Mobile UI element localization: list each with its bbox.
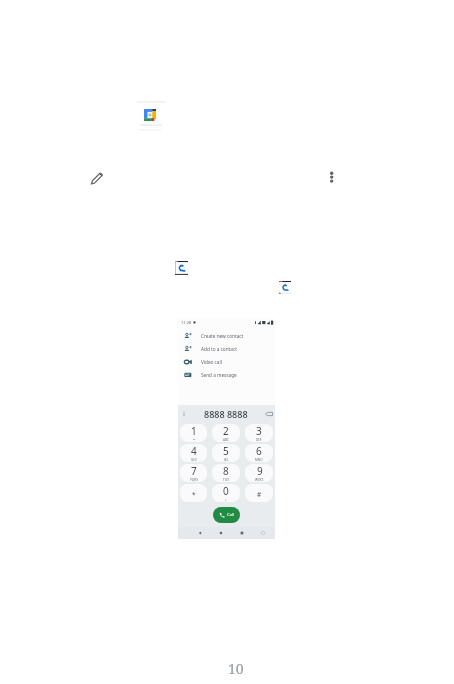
staticText: 10 bbox=[228, 659, 244, 678]
button[interactable]: Phone app screenshot bbox=[279, 281, 291, 294]
button[interactable]: 6 bbox=[245, 444, 273, 462]
staticText: 4 bbox=[191, 444, 197, 458]
button[interactable]: 5 bbox=[212, 444, 240, 462]
button[interactable]: 8 bbox=[212, 464, 240, 482]
button[interactable]: More options bbox=[325, 168, 339, 182]
staticText: Send a message bbox=[201, 372, 237, 378]
button[interactable]: Edit bbox=[90, 171, 104, 185]
button[interactable]: Add to a contact bbox=[178, 342, 275, 355]
staticText: 8 bbox=[223, 464, 229, 478]
button[interactable]: Backspace bbox=[265, 410, 273, 418]
staticText: # bbox=[257, 490, 262, 499]
button[interactable]: 4 bbox=[180, 444, 207, 462]
staticText: Create new contact bbox=[201, 333, 244, 339]
staticText: 9 bbox=[257, 464, 263, 478]
button[interactable]: Screenshot bbox=[259, 529, 267, 537]
staticText: MNO bbox=[255, 458, 263, 462]
button[interactable]: Options bbox=[180, 410, 188, 418]
button[interactable]: Phone app screenshot bbox=[175, 261, 188, 275]
button[interactable]: 7 bbox=[180, 464, 207, 482]
staticText: ABC bbox=[223, 438, 229, 442]
staticText: 2 bbox=[223, 424, 229, 438]
button[interactable]: Contacts app icon bbox=[144, 109, 156, 121]
button[interactable]: Call bbox=[213, 507, 240, 523]
button[interactable]: Home bbox=[217, 529, 225, 537]
staticText: Call bbox=[227, 512, 235, 518]
staticText: * bbox=[192, 490, 196, 499]
button[interactable]: 2 bbox=[212, 424, 240, 442]
button[interactable]: # bbox=[245, 484, 273, 502]
staticText: 0 bbox=[223, 484, 229, 498]
staticText: TUV bbox=[223, 478, 229, 482]
staticText: + bbox=[225, 498, 227, 502]
staticText: 1 bbox=[191, 424, 197, 438]
button[interactable]: 1 bbox=[180, 424, 207, 442]
button[interactable]: Send a message bbox=[178, 368, 275, 381]
staticText: 3 bbox=[256, 424, 262, 438]
staticText: WXYZ bbox=[255, 478, 264, 482]
staticText: JKL bbox=[224, 458, 229, 462]
staticText: •• bbox=[193, 438, 196, 442]
button[interactable]: 9 bbox=[245, 464, 273, 482]
staticText: 11:28 bbox=[181, 320, 192, 325]
staticText: DEF bbox=[256, 438, 262, 442]
staticText: 5 bbox=[223, 444, 229, 458]
staticText: Add to a contact bbox=[201, 346, 237, 352]
staticText: 8888 8888 bbox=[204, 408, 248, 420]
staticText: GHI bbox=[191, 458, 197, 462]
button[interactable]: 0 bbox=[212, 484, 240, 502]
staticText: Video call bbox=[201, 359, 222, 365]
button[interactable]: * bbox=[180, 484, 207, 502]
staticText: 7 bbox=[191, 464, 197, 478]
button[interactable]: Create new contact bbox=[178, 329, 275, 342]
button[interactable]: Recents bbox=[238, 529, 246, 537]
staticText: PQRS bbox=[190, 478, 198, 482]
button[interactable]: Video call bbox=[178, 355, 275, 368]
button[interactable]: Back bbox=[196, 529, 204, 537]
button[interactable]: 3 bbox=[245, 424, 273, 442]
staticText: 6 bbox=[256, 444, 262, 458]
